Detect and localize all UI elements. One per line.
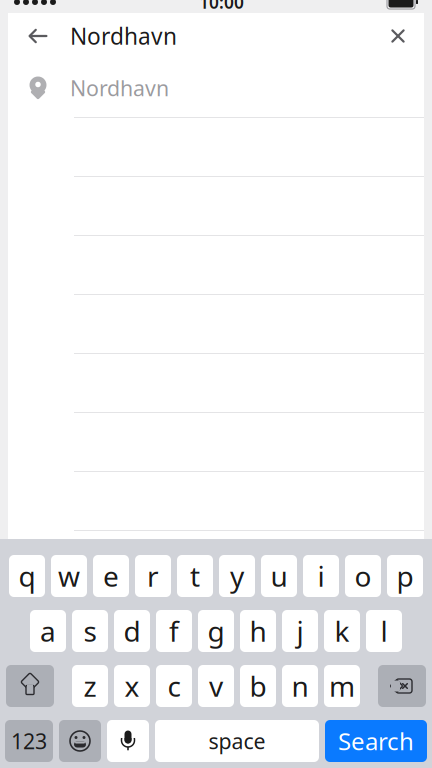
button[interactable]: l: [366, 610, 402, 652]
staticText: d: [123, 612, 140, 650]
staticText: 10:00: [199, 0, 244, 13]
staticText: Nordhavn: [70, 74, 169, 102]
button[interactable]: c: [156, 665, 192, 707]
staticText: q: [18, 557, 35, 595]
button[interactable]: Nordhavn: [8, 59, 424, 117]
button[interactable]: space: [155, 720, 319, 762]
button[interactable]: q: [9, 555, 45, 597]
staticText: f: [169, 612, 179, 650]
staticText: t: [190, 557, 200, 595]
staticText: v: [209, 667, 223, 705]
staticText: y: [230, 557, 244, 595]
staticText: n: [291, 667, 308, 705]
button[interactable]: 123: [5, 720, 53, 762]
button[interactable]: Emoji: [59, 720, 101, 762]
staticText: s: [83, 612, 96, 650]
staticText: x: [124, 667, 139, 705]
staticText: e: [103, 557, 119, 595]
staticText: Nordhavn: [70, 21, 177, 51]
staticText: b: [249, 667, 266, 705]
button[interactable]: x: [114, 665, 150, 707]
button[interactable]: y: [219, 555, 255, 597]
button[interactable]: Clear: [376, 13, 420, 59]
staticText: u: [270, 557, 287, 595]
staticText: p: [396, 557, 413, 595]
staticText: i: [317, 557, 324, 595]
button[interactable]: z: [72, 665, 108, 707]
button[interactable]: v: [198, 665, 234, 707]
staticText: g: [207, 612, 224, 650]
button[interactable]: r: [135, 555, 171, 597]
button[interactable]: k: [324, 610, 360, 652]
staticText: space: [208, 727, 265, 755]
button[interactable]: Delete: [378, 665, 426, 707]
button[interactable]: s: [72, 610, 108, 652]
button[interactable]: h: [240, 610, 276, 652]
staticText: j: [296, 612, 303, 650]
button[interactable]: Dictation: [107, 720, 149, 762]
button[interactable]: i: [303, 555, 339, 597]
button[interactable]: o: [345, 555, 381, 597]
button[interactable]: a: [30, 610, 66, 652]
button[interactable]: d: [114, 610, 150, 652]
button[interactable]: g: [198, 610, 234, 652]
staticText: h: [249, 612, 266, 650]
staticText: w: [58, 557, 80, 595]
button[interactable]: u: [261, 555, 297, 597]
button[interactable]: p: [387, 555, 423, 597]
button[interactable]: t: [177, 555, 213, 597]
button[interactable]: e: [93, 555, 129, 597]
staticText: 123: [11, 727, 47, 755]
staticText: m: [329, 667, 355, 705]
button[interactable]: f: [156, 610, 192, 652]
button[interactable]: Shift: [6, 665, 54, 707]
staticText: c: [167, 667, 180, 705]
staticText: k: [334, 612, 349, 650]
staticText: o: [354, 557, 371, 595]
staticText: l: [380, 612, 387, 650]
button[interactable]: w: [51, 555, 87, 597]
button[interactable]: m: [324, 665, 360, 707]
button[interactable]: n: [282, 665, 318, 707]
button[interactable]: Search: [325, 720, 427, 762]
staticText: z: [83, 667, 96, 705]
staticText: Search: [338, 725, 414, 757]
staticText: r: [147, 557, 159, 595]
button[interactable]: Back: [16, 13, 60, 59]
staticText: a: [40, 612, 56, 650]
button[interactable]: b: [240, 665, 276, 707]
button[interactable]: j: [282, 610, 318, 652]
